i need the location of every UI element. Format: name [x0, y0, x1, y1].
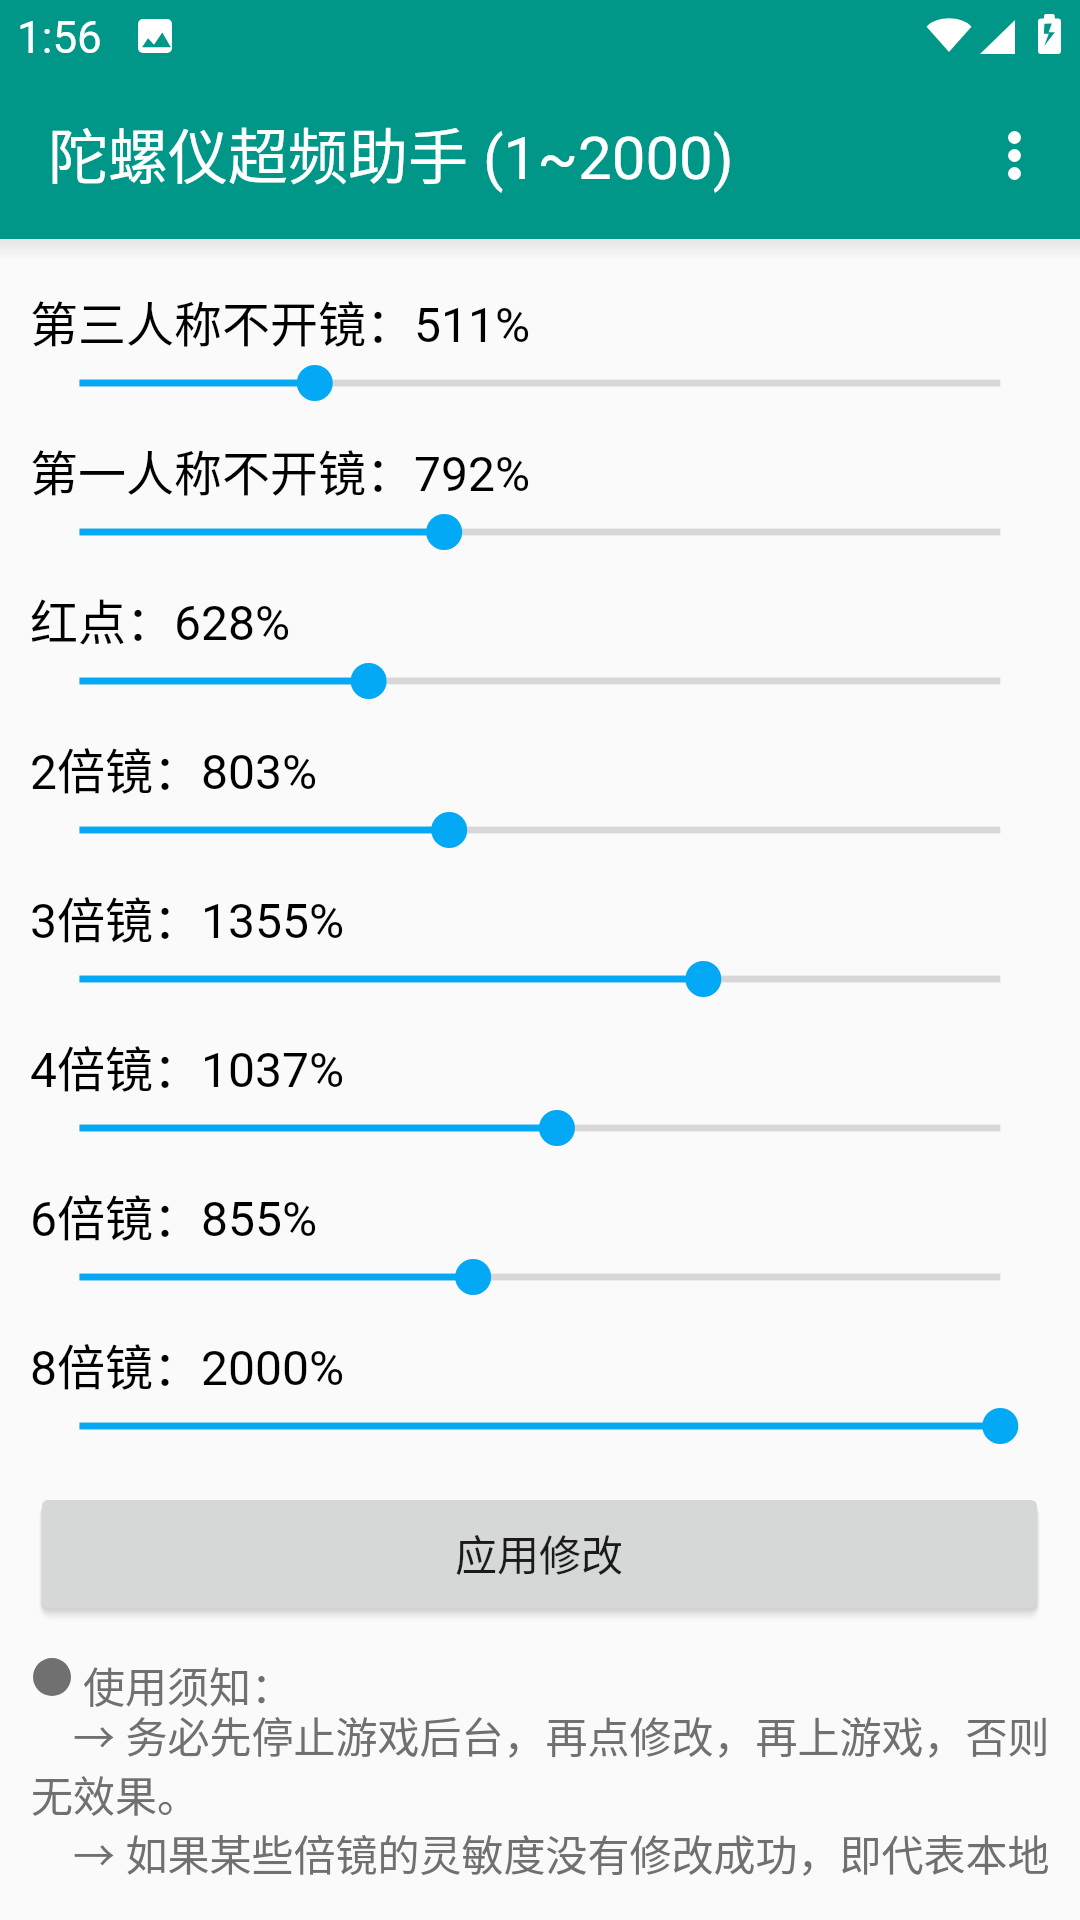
- button[interactable]: 第三人称不开镜：511%: [0, 270, 1080, 418]
- button[interactable]: 8倍镜：2000%: [0, 1313, 1080, 1461]
- button[interactable]: 第一人称不开镜：792%: [0, 419, 1080, 567]
- staticText: 第一人称不开镜：792%: [30, 435, 531, 505]
- staticText: 红点：628%: [30, 584, 291, 654]
- staticText: 第三人称不开镜：511%: [30, 286, 531, 356]
- staticText: 6倍镜：855%: [30, 1180, 318, 1250]
- staticText: 3倍镜：1355%: [30, 882, 345, 952]
- staticText: 应用修改: [455, 1522, 624, 1583]
- button[interactable]: 2倍镜：803%: [0, 717, 1080, 865]
- staticText: 使用须知：: [83, 1654, 294, 1715]
- staticText: 4倍镜：1037%: [30, 1031, 345, 1101]
- staticText: 1:56: [17, 12, 102, 64]
- button[interactable]: 6倍镜：855%: [0, 1164, 1080, 1312]
- staticText: 2倍镜：803%: [30, 733, 318, 803]
- button[interactable]: 4倍镜：1037%: [0, 1015, 1080, 1163]
- staticText: → 务必先停止游戏后台，再点修改，再上游戏，否则无效果。 → 如果某些倍镜的灵敏…: [31, 1704, 1077, 1883]
- button[interactable]: 红点：628%: [0, 568, 1080, 716]
- button[interactable]: 3倍镜：1355%: [0, 866, 1080, 1014]
- staticText: 陀螺仪超频助手 (1~2000): [48, 109, 734, 196]
- staticText: 8倍镜：2000%: [30, 1329, 345, 1399]
- button[interactable]: More options: [966, 107, 1062, 203]
- button[interactable]: 应用修改: [42, 1500, 1037, 1608]
